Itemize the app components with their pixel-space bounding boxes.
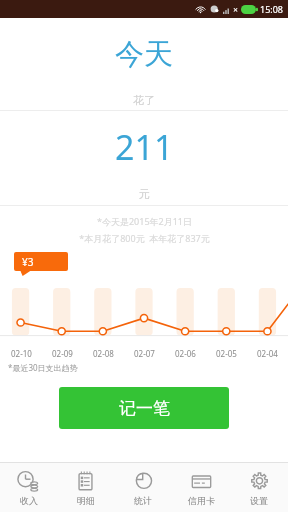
button[interactable]: 信用卡 (172, 463, 230, 512)
button[interactable]: 设置 (230, 463, 288, 512)
staticText: 花了 (133, 93, 155, 107)
staticText: ¥3 (22, 255, 34, 269)
staticText: 今天 (115, 36, 173, 73)
staticText: 设置 (250, 495, 268, 506)
staticText: *本月花了800元 本年花了837元 (79, 232, 210, 244)
staticText: 元 (139, 187, 150, 201)
staticText: 02-10 (11, 348, 32, 359)
staticText: 02-07 (134, 348, 155, 359)
staticText: 02-05 (216, 348, 237, 359)
staticText: 15:08 (260, 3, 284, 15)
staticText: 记一笔 (119, 398, 170, 419)
staticText: 02-09 (52, 348, 73, 359)
staticText: 02-06 (175, 348, 196, 359)
button[interactable]: 明细 (57, 463, 114, 512)
staticText: 02-04 (257, 348, 278, 359)
button[interactable]: 记一笔 (59, 387, 229, 429)
button[interactable]: 收入 (0, 463, 57, 512)
staticText: 明细 (77, 495, 95, 506)
staticText: 收入 (20, 495, 38, 506)
staticText: *最近30日支出趋势 (8, 362, 78, 373)
button[interactable]: 统计 (114, 463, 172, 512)
staticText: ✕ (233, 6, 239, 13)
staticText: *今天是2015年2月11日 (97, 215, 192, 227)
staticText: 211 (115, 124, 174, 170)
staticText: 信用卡 (188, 495, 215, 506)
staticText: 02-08 (93, 348, 114, 359)
staticText: 统计 (134, 495, 152, 506)
